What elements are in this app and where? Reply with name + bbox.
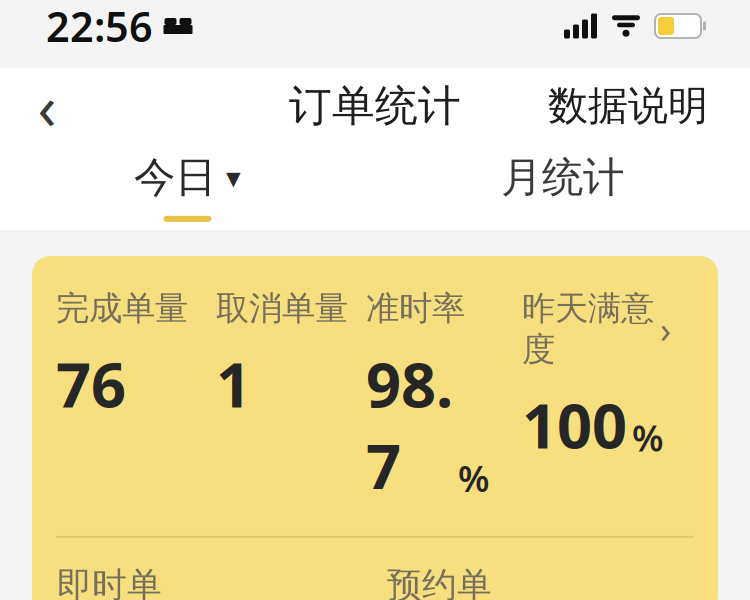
- button[interactable]: Back: [12, 70, 82, 142]
- staticText: %: [458, 454, 490, 502]
- staticText: 今日: [134, 152, 216, 203]
- button[interactable]: 数据说明: [542, 70, 714, 142]
- button[interactable]: 昨天满意度: [522, 288, 700, 465]
- button[interactable]: 月统计: [375, 144, 750, 230]
- staticText: 1: [216, 343, 251, 424]
- staticText: ▾: [226, 161, 241, 194]
- staticText: ‹: [37, 65, 56, 147]
- staticText: 即时单: [57, 564, 162, 600]
- staticText: 订单统计: [289, 80, 461, 132]
- button[interactable]: 今日: [0, 144, 375, 230]
- staticText: 22:56: [46, 0, 153, 53]
- staticText: 月统计: [501, 152, 624, 203]
- staticText: 数据说明: [548, 81, 708, 130]
- staticText: 预约单: [387, 564, 492, 600]
- staticText: %: [632, 413, 664, 461]
- staticText: 100: [522, 384, 627, 465]
- staticText: ›: [660, 305, 671, 353]
- staticText: 98.7: [366, 343, 453, 506]
- staticText: 昨天满意度: [522, 288, 654, 370]
- staticText: 取消单量: [216, 288, 348, 329]
- staticText: 准时率: [366, 288, 465, 329]
- staticText: 完成单量: [56, 288, 188, 329]
- staticText: 76: [56, 343, 126, 424]
